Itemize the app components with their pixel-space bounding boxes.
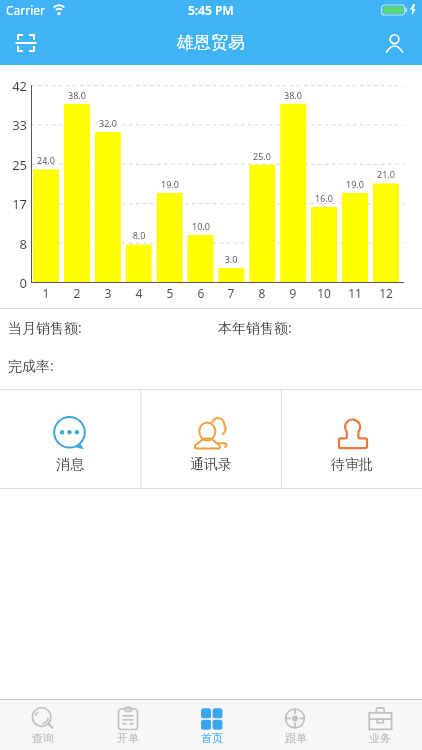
staticText: 通讯录: [190, 456, 232, 474]
staticText: 7: [218, 285, 244, 301]
staticText: 待审批: [331, 456, 373, 474]
staticText: 雄恩贸易: [177, 32, 245, 53]
staticText: 跟单: [285, 731, 307, 745]
staticText: 查询: [32, 731, 54, 745]
staticText: 8: [3, 235, 27, 251]
staticText: 16.0: [306, 192, 342, 204]
staticText: 消息: [56, 456, 84, 474]
staticText: 开单: [117, 731, 139, 745]
staticText: 10: [311, 285, 337, 301]
staticText: 0: [3, 274, 27, 290]
staticText: 5: [157, 285, 183, 301]
staticText: Carrier: [6, 2, 46, 18]
staticText: 32.0: [90, 117, 126, 129]
button[interactable]: 首页: [170, 699, 254, 750]
staticText: 42: [3, 77, 27, 93]
staticText: 4: [126, 285, 152, 301]
button[interactable]: [14, 31, 38, 55]
staticText: 33: [3, 116, 27, 132]
staticText: 19.0: [152, 178, 188, 190]
staticText: 8.0: [121, 229, 157, 241]
staticText: 19.0: [337, 178, 373, 190]
staticText: 11: [342, 285, 368, 301]
staticText: 当月销售额:: [8, 318, 82, 337]
staticText: 本年销售额:: [218, 318, 292, 337]
button[interactable]: 查询: [0, 699, 85, 750]
staticText: 3: [95, 285, 121, 301]
staticText: 25.0: [244, 150, 280, 162]
staticText: 2: [64, 285, 90, 301]
staticText: 24.0: [28, 154, 64, 166]
staticText: 38.0: [275, 89, 311, 101]
staticText: 17: [3, 195, 27, 211]
staticText: 3.0: [213, 253, 249, 265]
staticText: 12: [373, 285, 399, 301]
staticText: 1: [33, 285, 59, 301]
button[interactable]: 通讯录: [140, 389, 281, 489]
staticText: 首页: [201, 731, 223, 745]
staticText: 8: [249, 285, 275, 301]
staticText: 6: [188, 285, 214, 301]
staticText: 38.0: [59, 89, 95, 101]
button[interactable]: 开单: [85, 699, 170, 750]
button[interactable]: 业务: [338, 699, 422, 750]
button[interactable]: [382, 31, 406, 55]
staticText: 5:45 PM: [188, 2, 234, 18]
staticText: 21.0: [368, 168, 404, 180]
staticText: 9: [280, 285, 306, 301]
staticText: 业务: [369, 731, 391, 745]
button[interactable]: 消息: [0, 389, 140, 489]
button[interactable]: 跟单: [254, 699, 338, 750]
staticText: 25: [3, 156, 27, 172]
staticText: 完成率:: [8, 356, 54, 375]
button[interactable]: 待审批: [281, 389, 422, 489]
staticText: 10.0: [183, 220, 219, 232]
